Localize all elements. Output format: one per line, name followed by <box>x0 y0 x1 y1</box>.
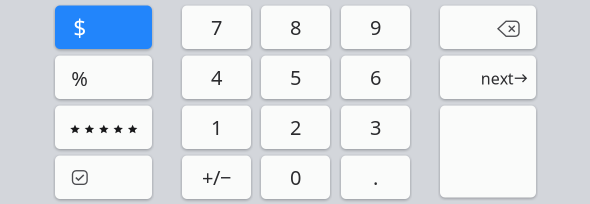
button[interactable]: 0 <box>0 0 590 204</box>
button[interactable]: . <box>0 0 590 204</box>
staticText: $ <box>73 13 86 43</box>
staticText: % <box>71 65 88 92</box>
button[interactable]: 4 <box>0 0 590 204</box>
staticText: . <box>373 164 378 191</box>
button[interactable]: 1 <box>0 0 590 204</box>
button[interactable]: % <box>0 0 590 204</box>
staticText: 6 <box>370 64 381 91</box>
staticText: 9 <box>370 14 381 41</box>
button[interactable]: Delete <box>0 0 590 204</box>
staticText: 2 <box>290 114 301 141</box>
staticText: 7 <box>211 14 222 41</box>
staticText: next <box>481 68 514 89</box>
button[interactable]: $ <box>0 0 590 204</box>
button[interactable]: 2 <box>0 0 590 204</box>
staticText: 4 <box>211 64 222 91</box>
staticText: +/− <box>202 164 231 191</box>
button[interactable]: Rating <box>0 0 590 204</box>
staticText: 0 <box>290 164 301 191</box>
staticText: 3 <box>370 114 381 141</box>
staticText: 8 <box>290 14 301 41</box>
button[interactable]: next <box>0 0 590 204</box>
staticText: 1 <box>211 114 222 141</box>
button[interactable]: 9 <box>0 0 590 204</box>
button[interactable]: 8 <box>0 0 590 204</box>
button[interactable]: 5 <box>0 0 590 204</box>
button[interactable]: Return <box>0 0 590 204</box>
button[interactable]: 6 <box>0 0 590 204</box>
button[interactable]: 7 <box>0 0 590 204</box>
staticText: 5 <box>290 64 301 91</box>
button[interactable]: 3 <box>0 0 590 204</box>
button[interactable]: Checkbox <box>0 0 590 204</box>
button[interactable]: +/− <box>0 0 590 204</box>
